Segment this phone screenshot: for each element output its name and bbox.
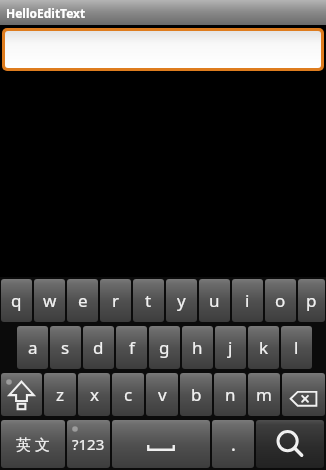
button[interactable] [5, 31, 321, 68]
button[interactable]: i [232, 279, 263, 322]
staticText: i [245, 289, 250, 312]
staticText: p [306, 289, 317, 312]
button[interactable]: n [214, 373, 246, 416]
staticText: u [209, 289, 220, 312]
button[interactable]: p [298, 279, 325, 322]
button[interactable]: z [44, 373, 76, 416]
button[interactable]: y [166, 279, 197, 322]
button[interactable]: Space [112, 420, 210, 468]
button[interactable]: 英 文 [1, 420, 65, 468]
staticText: v [158, 383, 167, 406]
staticText: l [294, 336, 299, 359]
staticText: q [11, 289, 22, 312]
button[interactable]: b [180, 373, 212, 416]
button[interactable]: x [78, 373, 110, 416]
button[interactable]: v [146, 373, 178, 416]
button[interactable]: t [133, 279, 164, 322]
button[interactable]: s [50, 326, 81, 369]
staticText: . [231, 432, 236, 457]
button[interactable]: j [215, 326, 246, 369]
button[interactable]: k [248, 326, 279, 369]
staticText: z [56, 383, 64, 406]
staticText: f [129, 336, 135, 359]
button[interactable]: HelloEditText [0, 0, 326, 25]
staticText: r [112, 289, 120, 312]
staticText: w [43, 289, 57, 312]
staticText: m [256, 383, 272, 406]
button[interactable]: l [281, 326, 312, 369]
staticText: ?123 [72, 434, 105, 454]
staticText: 英 文 [16, 434, 50, 454]
staticText: t [145, 289, 152, 312]
staticText: s [61, 336, 70, 359]
staticText: h [192, 336, 203, 359]
button[interactable]: q [1, 279, 32, 322]
button[interactable]: Delete [282, 373, 325, 416]
button[interactable]: o [265, 279, 296, 322]
staticText: c [124, 383, 133, 406]
button[interactable]: Shift [1, 373, 42, 416]
button[interactable]: f [116, 326, 147, 369]
button[interactable]: Search [256, 420, 324, 468]
staticText: a [28, 336, 38, 359]
button[interactable]: w [34, 279, 65, 322]
button[interactable]: . [212, 420, 254, 468]
staticText: g [159, 336, 170, 359]
staticText: k [259, 336, 269, 359]
staticText: b [191, 383, 202, 406]
button[interactable]: h [182, 326, 213, 369]
staticText: n [225, 383, 236, 406]
button[interactable]: r [100, 279, 131, 322]
staticText: HelloEditText [6, 5, 86, 21]
staticText: x [90, 383, 99, 406]
button[interactable]: a [17, 326, 48, 369]
button[interactable]: m [248, 373, 280, 416]
button[interactable]: u [199, 279, 230, 322]
staticText: e [78, 289, 88, 312]
staticText: d [93, 336, 104, 359]
button[interactable]: e [67, 279, 98, 322]
button[interactable]: d [83, 326, 114, 369]
button[interactable]: g [149, 326, 180, 369]
staticText: j [228, 336, 233, 359]
staticText: y [177, 289, 186, 312]
button[interactable]: c [112, 373, 144, 416]
staticText: o [275, 289, 286, 312]
button[interactable]: ?123 [67, 420, 110, 468]
